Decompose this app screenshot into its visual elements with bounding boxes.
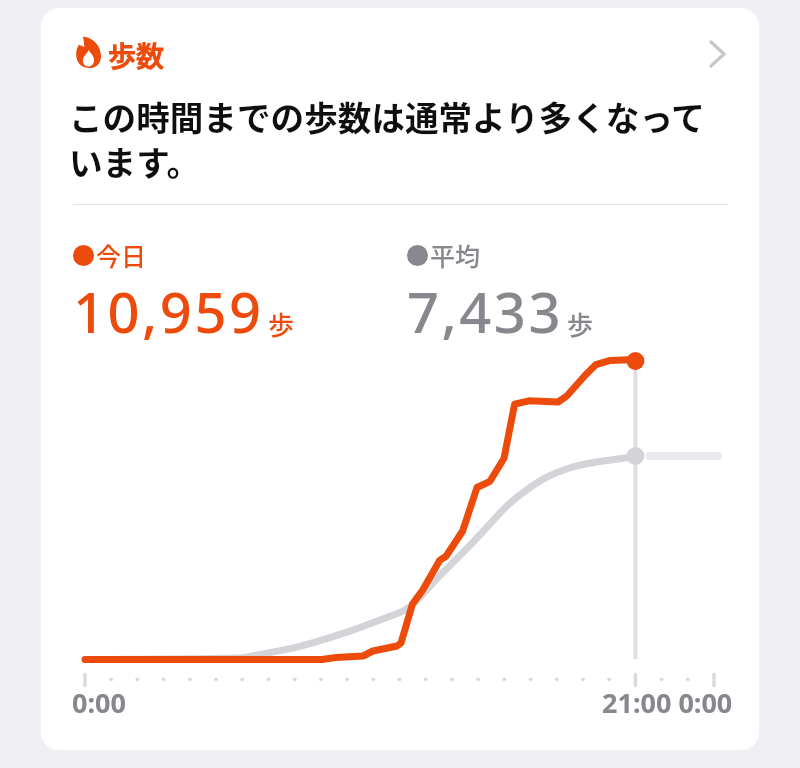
staticText: 歩数 [108, 35, 165, 76]
staticText: 21:00 0:00 [602, 684, 733, 721]
staticText: 歩 [567, 305, 594, 343]
staticText: 0:00 [72, 684, 126, 721]
staticText: 7,433 [407, 273, 563, 349]
staticText: 10,959 [73, 273, 264, 349]
staticText: 平均 [430, 237, 481, 273]
button[interactable]: 詳細を見る [692, 29, 746, 83]
staticText: この時間までの歩数は通常より多くなっています。 [69, 92, 721, 186]
staticText: 今日 [96, 237, 147, 273]
button[interactable]: 歩数 [41, 8, 759, 104]
staticText: 歩 [268, 305, 295, 343]
